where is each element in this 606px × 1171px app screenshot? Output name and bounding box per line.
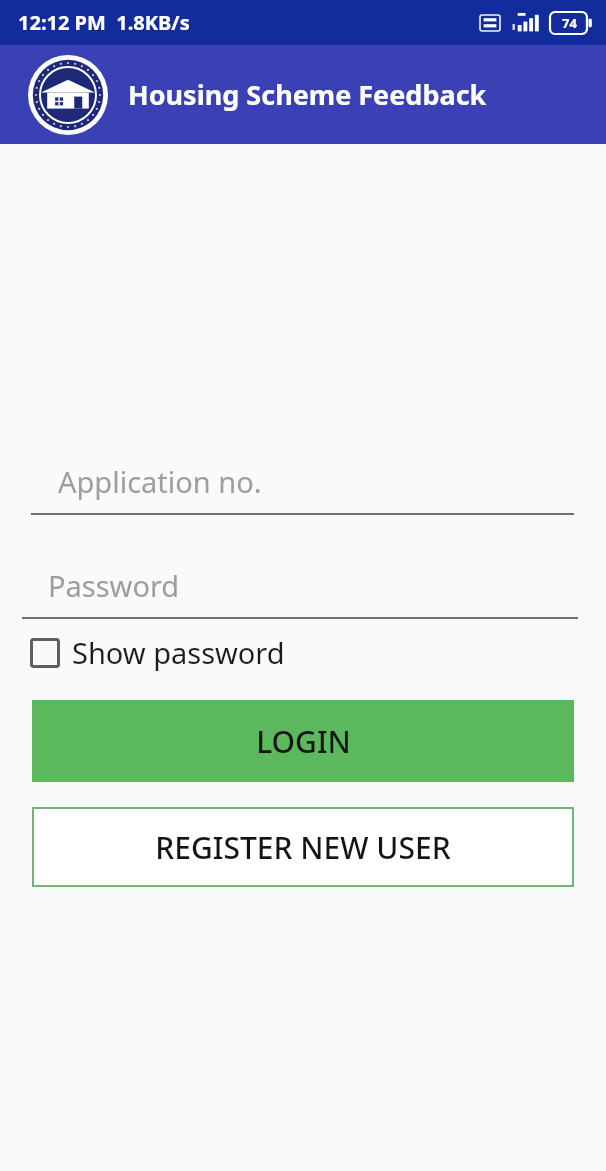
staticText: 12:12 PM 1.8KB/s — [18, 9, 190, 36]
staticText: Show password — [72, 633, 285, 672]
staticText: 74 — [562, 14, 577, 32]
staticText: Password — [48, 566, 180, 605]
button[interactable]: REGISTER NEW USER — [32, 807, 574, 887]
staticText: Application no. — [58, 462, 262, 501]
other: DDA logo — [28, 55, 108, 135]
staticText: REGISTER NEW USER — [155, 827, 451, 868]
button[interactable]: Show password — [30, 633, 285, 672]
button[interactable]: Password — [0, 566, 606, 619]
staticText: Housing Scheme Feedback — [128, 76, 487, 113]
staticText: LOGIN — [256, 721, 351, 762]
button[interactable]: Application no. — [0, 462, 606, 515]
button[interactable]: LOGIN — [32, 700, 574, 782]
